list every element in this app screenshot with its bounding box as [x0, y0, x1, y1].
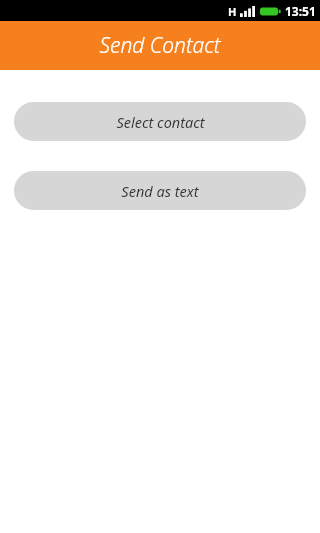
staticText: H: [228, 4, 237, 19]
staticText: Send Contact: [99, 31, 221, 60]
button[interactable]: Select contact: [14, 102, 306, 141]
staticText: Send as text: [121, 181, 199, 201]
other: Signal strength: [240, 6, 255, 17]
staticText: Select contact: [116, 112, 205, 132]
other: Battery: [260, 6, 281, 17]
staticText: 13:51: [285, 3, 316, 19]
button[interactable]: Send as text: [14, 171, 306, 210]
